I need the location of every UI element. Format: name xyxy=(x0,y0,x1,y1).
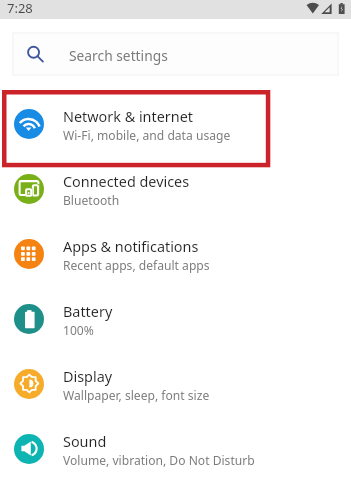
staticText: Search settings xyxy=(69,46,168,65)
staticText: Volume, vibration, Do Not Disturb xyxy=(63,452,255,468)
staticText: Connected devices xyxy=(63,172,190,192)
staticText: Wi-Fi, mobile, and data usage xyxy=(63,127,231,143)
staticText: 100% xyxy=(63,322,94,338)
staticText: Network & internet xyxy=(63,107,193,127)
staticText: Bluetooth xyxy=(63,192,120,208)
button[interactable]: Battery xyxy=(0,286,351,351)
staticText: Battery xyxy=(63,302,113,322)
button[interactable]: Network and internet xyxy=(0,91,351,156)
other: Connected devices xyxy=(14,174,44,204)
other: Display xyxy=(14,369,44,399)
other: Apps and notifications xyxy=(14,239,44,269)
staticText: Recent apps, default apps xyxy=(63,257,210,273)
other: Network and internet xyxy=(14,109,44,139)
staticText: Apps & notifications xyxy=(63,237,199,257)
staticText: Sound xyxy=(63,432,107,452)
button[interactable]: Connected devices xyxy=(0,156,351,221)
button[interactable]: Sound xyxy=(0,416,351,481)
button[interactable]: Display xyxy=(0,351,351,416)
other: Sound xyxy=(14,434,44,464)
staticText: Display xyxy=(63,367,113,387)
button[interactable]: Search settings xyxy=(12,32,339,76)
staticText: 7:28 xyxy=(7,0,33,17)
staticText: Wallpaper, sleep, font size xyxy=(63,387,210,403)
other: Battery xyxy=(14,304,44,334)
button[interactable]: Apps and notifications xyxy=(0,221,351,286)
